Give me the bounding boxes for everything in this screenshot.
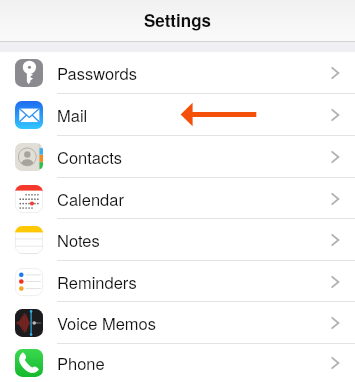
button[interactable]: Calendar [0,178,355,219]
button[interactable]: Notes [0,219,355,261]
staticText: Notes [57,228,100,252]
button[interactable]: Contacts [0,136,355,178]
staticText: Contacts [57,145,123,169]
staticText: Mail [57,103,88,127]
button[interactable]: Reminders [0,261,355,302]
button[interactable]: Phone [0,344,355,382]
button[interactable]: Voice Memos [0,302,355,344]
staticText: Passwords [57,61,138,85]
button[interactable]: Passwords [0,52,355,94]
staticText: Phone [57,351,105,375]
button[interactable]: Mail [0,94,355,136]
staticText: Calendar [57,187,124,211]
staticText: Settings [144,8,211,32]
staticText: Reminders [57,270,137,294]
staticText: Voice Memos [57,311,157,335]
